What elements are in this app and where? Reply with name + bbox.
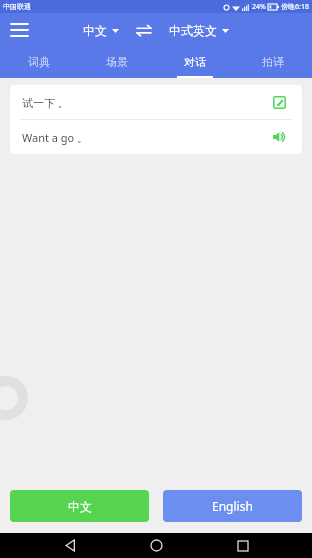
button[interactable]: 拍译 bbox=[234, 46, 312, 78]
button[interactable]: Home bbox=[139, 533, 173, 558]
button[interactable]: 中文 bbox=[10, 490, 149, 522]
button[interactable]: English bbox=[163, 490, 302, 522]
button[interactable]: 试一下 。 bbox=[10, 85, 302, 119]
staticText: Want a go 。 bbox=[22, 130, 268, 145]
button[interactable]: 对话 bbox=[156, 46, 234, 78]
staticText: 试一下 。 bbox=[22, 95, 268, 110]
staticText: 场景 bbox=[106, 55, 128, 69]
staticText: 中式英文 bbox=[169, 23, 217, 38]
staticText: 拍译 bbox=[262, 55, 284, 69]
staticText: 中文 bbox=[83, 23, 107, 38]
button[interactable]: 中文 bbox=[81, 20, 121, 41]
staticText: English bbox=[212, 498, 253, 514]
button[interactable]: Menu bbox=[6, 17, 32, 43]
staticText: 24% bbox=[252, 2, 266, 12]
button[interactable]: 场景 bbox=[78, 46, 156, 78]
button[interactable]: Back bbox=[53, 533, 87, 558]
button[interactable]: Swap languages bbox=[133, 19, 155, 41]
staticText: 对话 bbox=[184, 55, 206, 69]
button[interactable]: 中式英文 bbox=[167, 20, 231, 41]
staticText: 词典 bbox=[28, 55, 50, 69]
staticText: 傍晚6:18 bbox=[281, 2, 309, 12]
button[interactable]: Want a go 。 bbox=[10, 120, 302, 154]
staticText: 中国联通 bbox=[3, 2, 31, 11]
staticText: 中文 bbox=[68, 499, 92, 514]
button[interactable]: Edit bbox=[268, 91, 290, 113]
button[interactable]: Recent apps bbox=[226, 533, 260, 558]
button[interactable]: Play audio bbox=[268, 126, 290, 148]
button[interactable]: 词典 bbox=[0, 46, 78, 78]
